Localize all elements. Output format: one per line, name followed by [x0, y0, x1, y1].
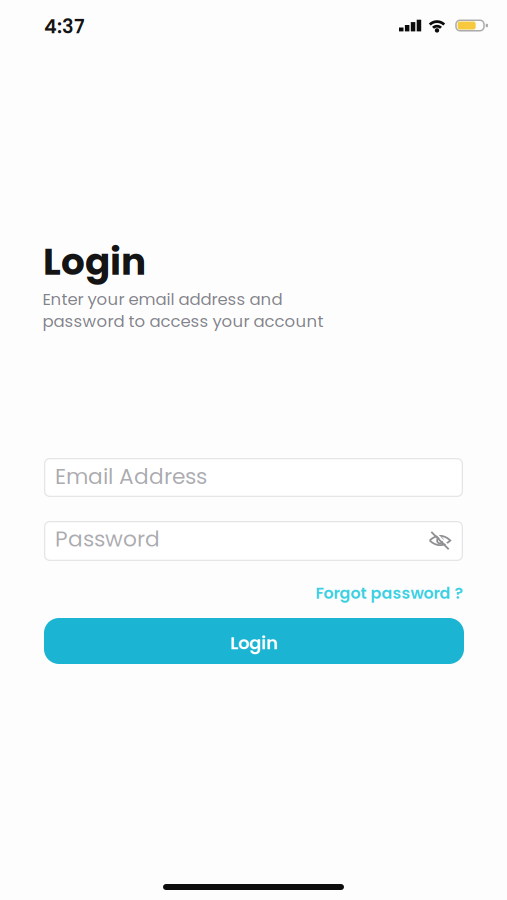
staticText: Enter your email address and	[42, 288, 282, 311]
staticText: Password	[55, 524, 160, 554]
staticText: Login	[43, 235, 146, 288]
staticText: 4:37	[44, 13, 85, 40]
button[interactable]: Forgot password ?	[315, 582, 463, 604]
staticText: Email Address	[55, 461, 207, 492]
staticText: Forgot password ?	[315, 582, 463, 604]
button[interactable]: Show password	[428, 528, 452, 552]
staticText: password to access your account	[42, 310, 323, 333]
button[interactable]: Login	[44, 618, 464, 664]
staticText: Login	[230, 630, 278, 656]
